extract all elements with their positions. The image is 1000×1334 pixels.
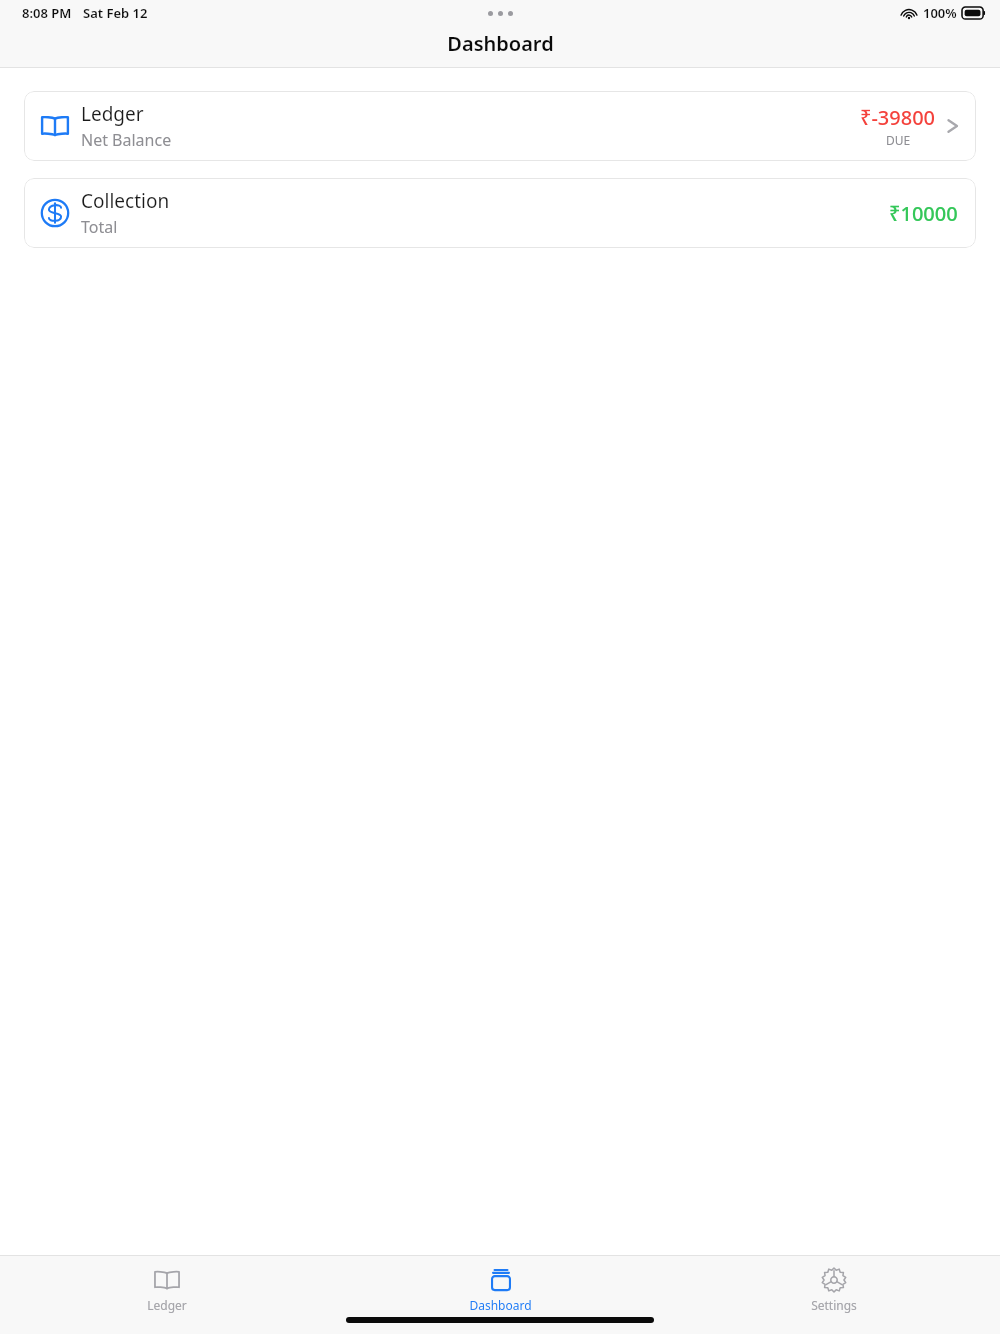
staticText: Net Balance [81, 129, 172, 151]
staticText: ₹-39800 [860, 104, 936, 131]
staticText: DUE [886, 132, 911, 148]
button[interactable]: Collection [24, 178, 976, 248]
button[interactable]: Settings [667, 1256, 1000, 1313]
staticText: Settings [811, 1297, 857, 1313]
staticText: 8:08 PM [22, 4, 72, 22]
staticText: Collection [81, 188, 170, 214]
button[interactable]: Ledger [0, 1256, 334, 1313]
staticText: Ledger [147, 1297, 187, 1313]
staticText: Total [81, 216, 118, 238]
button[interactable]: Ledger [24, 91, 976, 161]
button[interactable]: Dashboard [334, 1256, 667, 1313]
staticText: Sat Feb 12 [83, 4, 148, 22]
staticText: Ledger [81, 101, 144, 127]
staticText: Dashboard [469, 1297, 532, 1313]
staticText: 100% [923, 4, 957, 22]
staticText: ₹10000 [889, 200, 958, 227]
staticText: Dashboard [447, 30, 554, 57]
